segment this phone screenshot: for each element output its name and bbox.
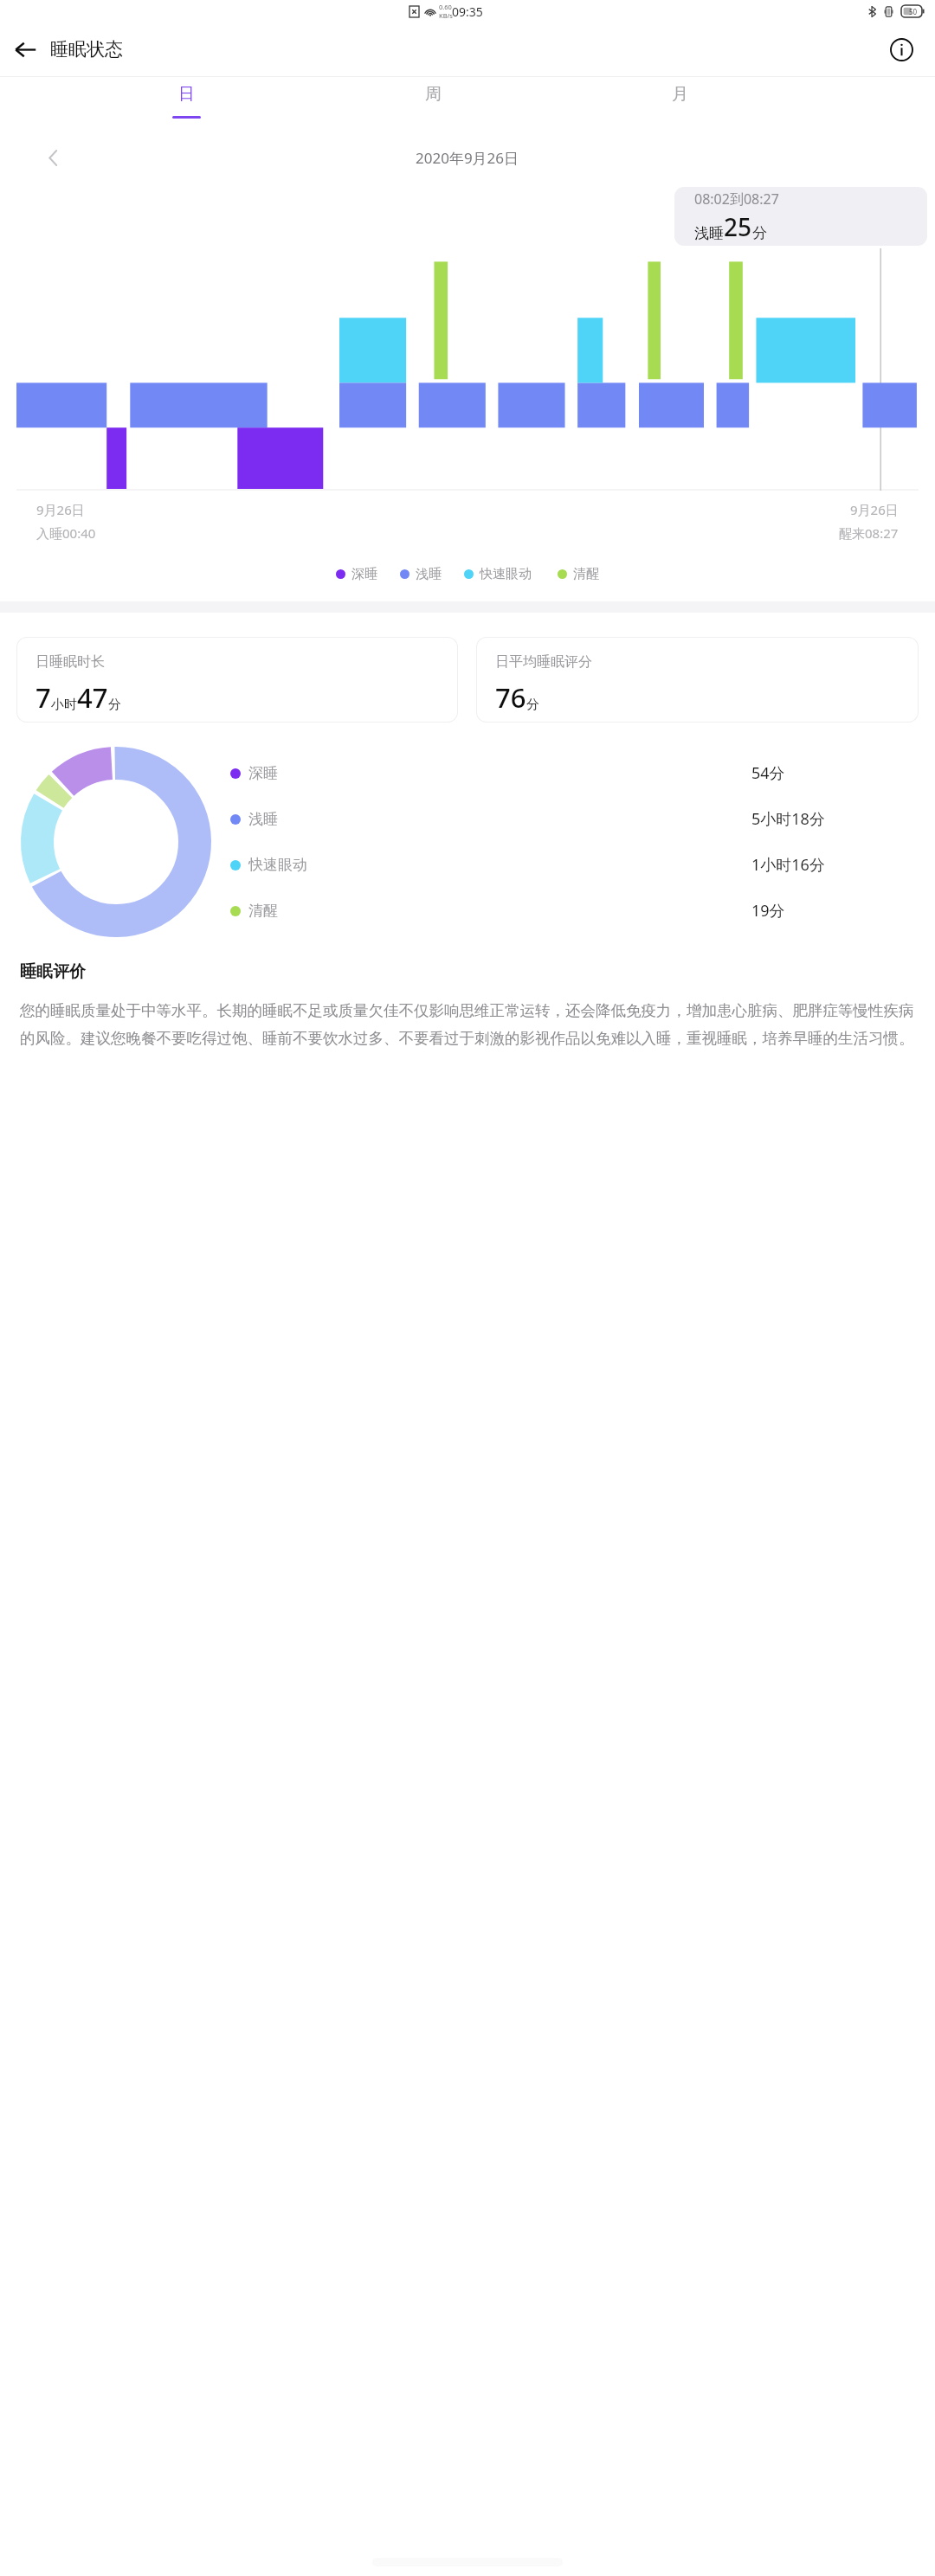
staticText: 50 bbox=[909, 7, 918, 16]
staticText: 快速眼动 bbox=[480, 566, 532, 582]
staticText: 日 bbox=[178, 84, 195, 105]
staticText: 9月26日 bbox=[36, 501, 85, 518]
staticText: 25 bbox=[724, 210, 752, 243]
staticText: 您的睡眠质量处于中等水平。长期的睡眠不足或质量欠佳不仅影响思维正常运转，还会降低… bbox=[20, 1001, 915, 1048]
button[interactable]: 浅睡 bbox=[400, 566, 442, 582]
staticText: 睡眠状态 bbox=[50, 38, 123, 61]
staticText: 9月26日 bbox=[850, 501, 899, 518]
button[interactable]: 周 bbox=[310, 77, 557, 131]
staticText: 月 bbox=[672, 84, 688, 105]
staticText: 浅睡 bbox=[416, 566, 442, 582]
button[interactable]: 日 bbox=[62, 77, 310, 131]
staticText: 周 bbox=[425, 84, 442, 105]
staticText: 1小时16分 bbox=[751, 854, 825, 876]
staticText: 浅睡 bbox=[694, 224, 724, 242]
staticText: 76 bbox=[495, 679, 526, 716]
staticText: 08:02到08:27 bbox=[694, 190, 779, 209]
button[interactable]: 快速眼动 bbox=[230, 842, 906, 888]
staticText: 54分 bbox=[751, 762, 785, 784]
button[interactable]: 清醒 bbox=[558, 566, 599, 582]
staticText: 日睡眠时长 bbox=[35, 653, 105, 671]
staticText: 5小时18分 bbox=[751, 808, 825, 830]
staticText: 7 bbox=[35, 679, 51, 716]
staticText: 醒来08:27 bbox=[839, 524, 899, 542]
button[interactable]: 日睡眠时长 bbox=[17, 638, 457, 722]
staticText: 快速眼动 bbox=[248, 856, 307, 874]
staticText: 分 bbox=[526, 697, 539, 713]
staticText: 0.60 bbox=[439, 3, 452, 11]
staticText: 深睡 bbox=[351, 566, 377, 582]
button[interactable]: 清醒 bbox=[230, 888, 906, 934]
staticText: 09:35 bbox=[452, 3, 483, 20]
staticText: 浅睡 bbox=[248, 810, 278, 828]
button[interactable]: 浅睡 bbox=[230, 796, 906, 842]
button[interactable]: 深睡 bbox=[336, 566, 377, 582]
button[interactable]: Previous day bbox=[36, 140, 71, 175]
staticText: 19分 bbox=[751, 900, 785, 922]
staticText: 清醒 bbox=[248, 902, 278, 920]
staticText: 小时 bbox=[51, 697, 77, 713]
staticText: 分 bbox=[752, 224, 767, 242]
staticText: 入睡00:40 bbox=[36, 524, 96, 542]
staticText: 日平均睡眠评分 bbox=[495, 653, 592, 671]
staticText: 2020年9月26日 bbox=[416, 148, 519, 168]
staticText: 深睡 bbox=[248, 764, 278, 782]
staticText: 47 bbox=[77, 679, 108, 716]
button[interactable]: 月 bbox=[557, 77, 803, 131]
staticText: 睡眠评价 bbox=[20, 961, 86, 982]
staticText: KB/s bbox=[439, 11, 453, 20]
button[interactable]: 快速眼动 bbox=[464, 566, 532, 582]
button[interactable]: 日平均睡眠评分 bbox=[477, 638, 918, 722]
button[interactable]: Info bbox=[877, 25, 925, 74]
staticText: 分 bbox=[108, 697, 121, 713]
staticText: 清醒 bbox=[573, 566, 599, 582]
button[interactable]: Back bbox=[0, 24, 50, 74]
button[interactable]: 深睡 bbox=[230, 750, 906, 796]
